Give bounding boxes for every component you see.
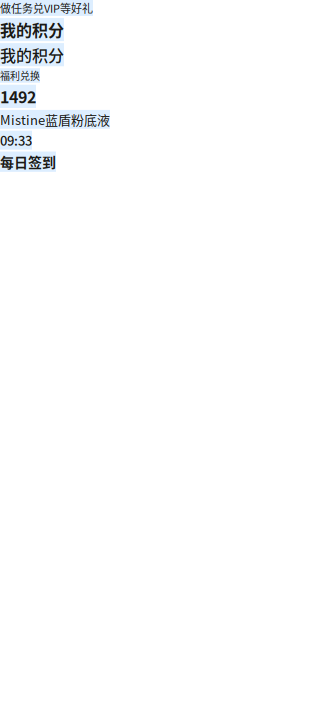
staticText: 福利兑换 — [0, 68, 40, 83]
staticText: 我的积分 — [0, 18, 64, 41]
staticText: 09:33 — [0, 131, 32, 149]
staticText: 1492 — [0, 85, 36, 108]
staticText: 我的积分 — [0, 43, 64, 66]
staticText: 每日签到 — [0, 152, 56, 172]
staticText: 做任务兑VIP等好礼 — [0, 0, 93, 16]
staticText: Mistine蓝盾粉底液 — [0, 110, 110, 129]
